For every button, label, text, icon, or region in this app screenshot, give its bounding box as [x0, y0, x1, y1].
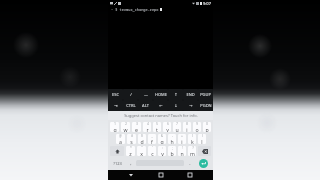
staticText: ?	[192, 146, 194, 150]
staticText: $	[141, 134, 143, 138]
button[interactable]: '	[148, 146, 156, 156]
staticText: ~ $ termux_change-repo	[111, 7, 159, 12]
staticText: ←	[159, 103, 163, 108]
button[interactable]: $	[138, 134, 146, 144]
staticText: 8	[186, 122, 188, 126]
staticText: ⇥	[114, 103, 118, 108]
staticText: 9	[196, 122, 198, 126]
button[interactable]: Suggest contact names? Touch for info.	[108, 111, 213, 120]
button[interactable]: ⇥	[108, 100, 123, 111]
button[interactable]: ?	[188, 146, 196, 156]
staticText: l	[201, 138, 203, 144]
staticText: j	[181, 138, 183, 144]
button[interactable]: 3	[132, 122, 141, 132]
button[interactable]: Shift	[110, 146, 124, 156]
staticText: →	[189, 103, 193, 108]
staticText: .	[189, 160, 191, 167]
button[interactable]: 9	[193, 122, 201, 132]
button[interactable]: 1	[110, 122, 119, 132]
staticText: *	[130, 146, 132, 150]
staticText: k	[191, 138, 194, 144]
button[interactable]: ↑	[168, 89, 183, 100]
button[interactable]: +	[178, 134, 186, 144]
staticText: /	[130, 92, 132, 97]
button[interactable]: 6	[163, 122, 171, 132]
staticText: g	[160, 138, 164, 144]
button[interactable]: ←	[153, 100, 168, 111]
staticText: o	[195, 126, 199, 132]
staticText: a	[119, 138, 122, 144]
staticText: #	[131, 134, 133, 138]
button[interactable]: 4	[143, 122, 151, 132]
button[interactable]: _	[148, 134, 156, 144]
staticText: h	[170, 138, 174, 144]
staticText: c	[151, 150, 154, 156]
staticText: HOME	[155, 92, 167, 97]
button[interactable]: Recents	[184, 170, 196, 180]
button[interactable]: 5	[153, 122, 161, 132]
button[interactable]: END	[183, 89, 198, 100]
button[interactable]: Back	[125, 170, 137, 180]
button[interactable]: 2	[121, 122, 130, 132]
button[interactable]: 8	[183, 122, 191, 132]
staticText: e	[135, 126, 138, 132]
staticText: )	[202, 134, 203, 138]
staticText: 4	[147, 122, 149, 126]
staticText: —	[144, 92, 148, 97]
button[interactable]: ;	[168, 146, 176, 156]
button[interactable]: ALT	[138, 100, 153, 111]
staticText: '	[152, 146, 153, 150]
staticText: ↑	[174, 92, 178, 97]
button[interactable]: 7	[173, 122, 181, 132]
staticText: 5	[156, 122, 158, 126]
button[interactable]: &	[158, 134, 166, 144]
button[interactable]: Backspace	[198, 146, 211, 156]
staticText: 9:07	[203, 1, 211, 6]
staticText: d	[140, 138, 144, 144]
button[interactable]: !	[178, 146, 186, 156]
button[interactable]: -	[168, 134, 176, 144]
button[interactable]: Home	[155, 170, 167, 180]
button[interactable]: @	[116, 134, 125, 144]
button[interactable]: —	[138, 89, 153, 100]
button[interactable]: →	[183, 100, 198, 111]
staticText: f	[151, 138, 153, 144]
button[interactable]: /	[123, 89, 138, 100]
button[interactable]: :	[158, 146, 166, 156]
button[interactable]: #	[127, 134, 136, 144]
button[interactable]: PGDN	[198, 100, 213, 111]
staticText: PGDN	[200, 103, 212, 108]
button[interactable]: PGUP	[198, 89, 213, 100]
staticText: i	[186, 126, 188, 132]
staticText: m	[190, 150, 195, 156]
staticText: 1	[114, 122, 116, 126]
button[interactable]: Enter	[199, 159, 208, 168]
staticText: x	[140, 150, 143, 156]
staticText: ,	[130, 160, 132, 167]
staticText: +	[181, 134, 183, 138]
button[interactable]: 0	[203, 122, 211, 132]
button[interactable]: (	[188, 134, 196, 144]
button[interactable]: ,	[126, 157, 135, 169]
staticText: ↓	[174, 103, 178, 108]
button[interactable]: )	[198, 134, 206, 144]
button[interactable]: ?123	[110, 158, 125, 168]
button[interactable]: .	[185, 157, 194, 169]
staticText: CTRL	[126, 103, 136, 108]
staticText: END	[186, 92, 195, 97]
staticText: Suggest contact names? Touch for info.	[124, 113, 198, 118]
button[interactable]: ESC	[108, 89, 123, 100]
staticText: 0	[206, 122, 208, 126]
button[interactable]: *	[126, 146, 135, 156]
staticText: y	[166, 126, 169, 132]
staticText: v	[161, 150, 164, 156]
staticText: p	[205, 126, 209, 132]
button[interactable]: HOME	[153, 89, 168, 100]
button[interactable]: CTRL	[123, 100, 138, 111]
staticText: n	[180, 150, 184, 156]
button[interactable]: ↓	[168, 100, 183, 111]
staticText: ?123	[113, 161, 122, 166]
staticText: z	[129, 150, 132, 156]
button[interactable]: "	[137, 146, 146, 156]
